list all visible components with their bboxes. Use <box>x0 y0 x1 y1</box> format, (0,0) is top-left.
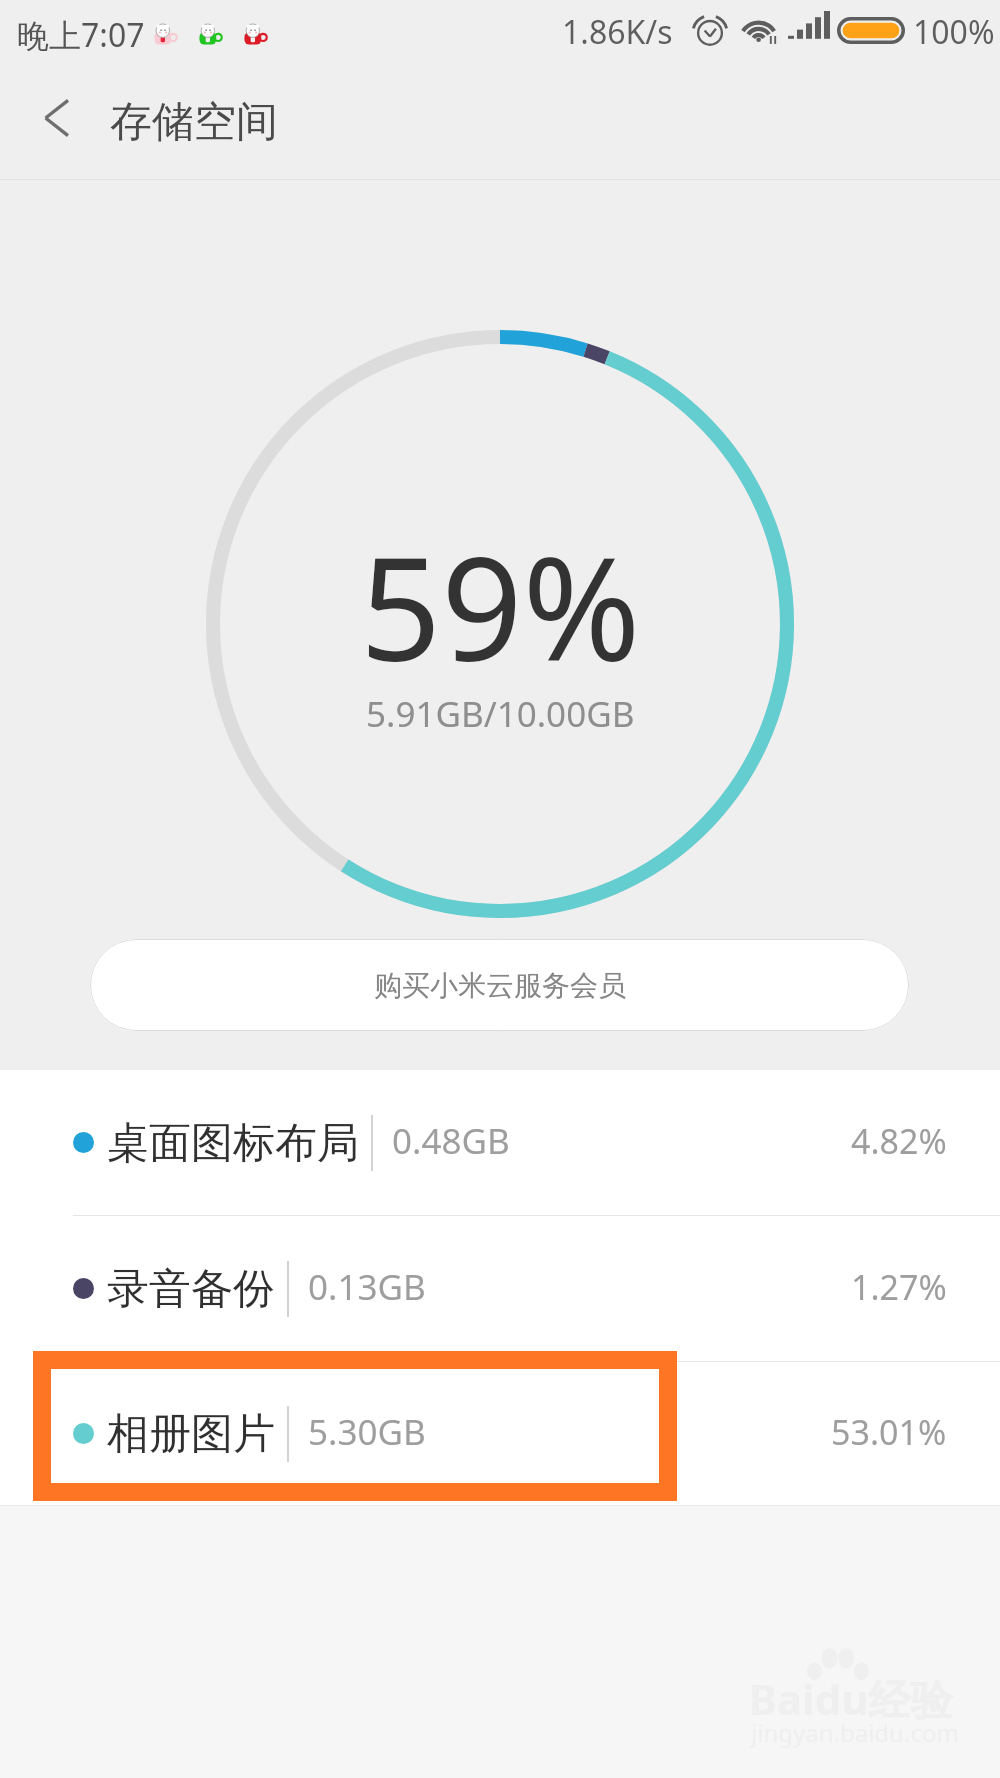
staticText: 录音备份 <box>107 1263 275 1316</box>
staticText: 5.91GB/10.00GB <box>366 690 635 738</box>
staticText: 53.01% <box>831 1409 947 1455</box>
staticText: 购买小米云服务会员 <box>374 968 626 1003</box>
staticText: 0.13GB <box>308 1263 426 1311</box>
staticText: 相册图片 <box>107 1408 275 1461</box>
staticText: 桌面图标布局 <box>107 1117 359 1170</box>
button[interactable]: Back <box>0 70 110 180</box>
staticText: 0.48GB <box>392 1117 510 1165</box>
staticText: 存储空间 <box>110 96 278 149</box>
button[interactable]: 购买小米云服务会员 <box>90 939 909 1031</box>
button[interactable]: 录音备份 <box>0 1216 1000 1361</box>
button[interactable]: 桌面图标布局 <box>0 1070 1000 1215</box>
button[interactable]: 相册图片 <box>0 1362 1000 1505</box>
staticText: 59% <box>360 509 641 702</box>
staticText: 4.82% <box>851 1118 947 1164</box>
staticText: 1.86K/s <box>562 10 673 54</box>
staticText: 100% <box>913 10 995 54</box>
staticText: Baidu经验 <box>749 1670 953 1727</box>
staticText: 1.27% <box>851 1264 947 1310</box>
staticText: 5.30GB <box>308 1408 426 1456</box>
staticText: 晚上7:07 <box>17 13 145 57</box>
